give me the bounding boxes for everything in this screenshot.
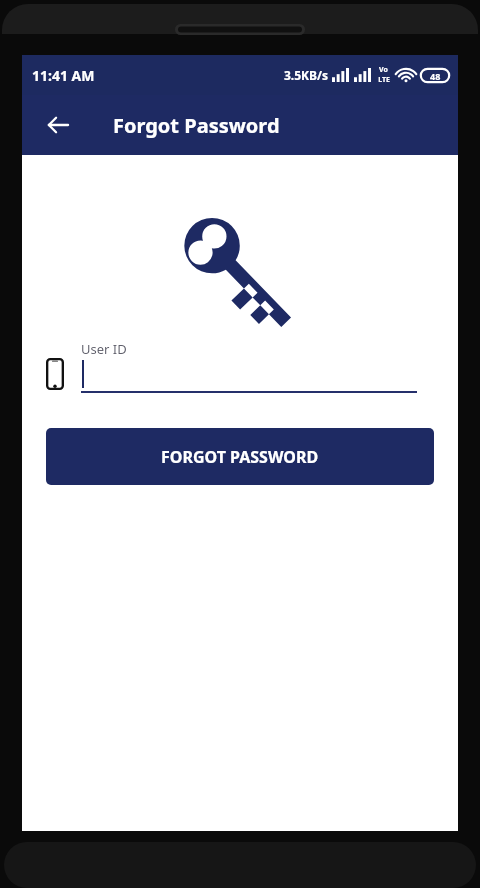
staticText: LTE: [378, 75, 390, 85]
button[interactable]: FORGOT PASSWORD: [46, 428, 434, 485]
staticText: User ID: [81, 340, 127, 358]
button[interactable]: Back: [38, 105, 78, 145]
staticText: 3.5KB/s: [284, 67, 329, 83]
staticText: FORGOT PASSWORD: [161, 446, 319, 468]
staticText: 11:41 AM: [32, 66, 95, 85]
staticText: Forgot Password: [113, 112, 280, 139]
staticText: Vo: [379, 65, 388, 75]
staticText: 48: [430, 70, 441, 82]
